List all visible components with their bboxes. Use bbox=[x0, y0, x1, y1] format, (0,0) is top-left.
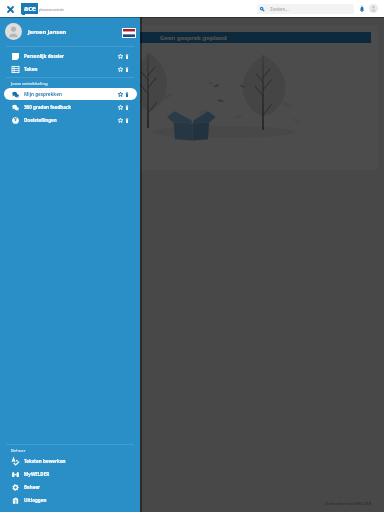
staticText: Teksten bewerken bbox=[24, 458, 66, 464]
button[interactable]: Close menu bbox=[8, 3, 13, 15]
staticText: MyWELDER bbox=[24, 471, 50, 477]
staticText: Beheer bbox=[11, 447, 26, 453]
button[interactable]: Doelstellingen bbox=[4, 114, 137, 126]
button[interactable]: Zoeken... bbox=[257, 4, 354, 14]
staticText: 360 graden feedback bbox=[24, 104, 72, 110]
staticText: ace bbox=[24, 4, 36, 14]
staticText: Jeroen Jansen bbox=[28, 28, 67, 36]
staticText: Zoeken... bbox=[270, 6, 289, 12]
staticText: Onderdeel van WELDER bbox=[325, 501, 372, 507]
staticText: Jouw ontwikkeling bbox=[11, 80, 48, 86]
button[interactable]: Mijn gesprekken bbox=[4, 88, 137, 100]
button[interactable]: Jeroen Jansen bbox=[0, 17, 140, 46]
button[interactable]: Teksten bewerken bbox=[4, 455, 137, 467]
button[interactable]: Notifications bbox=[358, 3, 366, 15]
staticText: Taken bbox=[24, 66, 38, 72]
staticText: Geen gesprek gepland bbox=[160, 34, 227, 42]
button[interactable]: 360 graden feedback bbox=[4, 101, 137, 113]
button[interactable]: MyWELDER bbox=[4, 468, 137, 480]
staticText: Personlijk dossier bbox=[24, 53, 65, 59]
button[interactable]: Beheer bbox=[4, 481, 137, 493]
button[interactable]: Taken bbox=[4, 63, 137, 75]
staticText: pharmacontrole bbox=[39, 7, 65, 11]
staticText: Doelstellingen bbox=[24, 117, 57, 123]
button[interactable]: Personlijk dossier bbox=[4, 50, 137, 62]
staticText: Beheer bbox=[24, 484, 41, 490]
staticText: Mijn gesprekken bbox=[24, 91, 62, 97]
staticText: Uitloggen bbox=[24, 497, 47, 503]
button[interactable]: Uitloggen bbox=[4, 494, 137, 506]
button[interactable]: Profile bbox=[369, 4, 378, 13]
